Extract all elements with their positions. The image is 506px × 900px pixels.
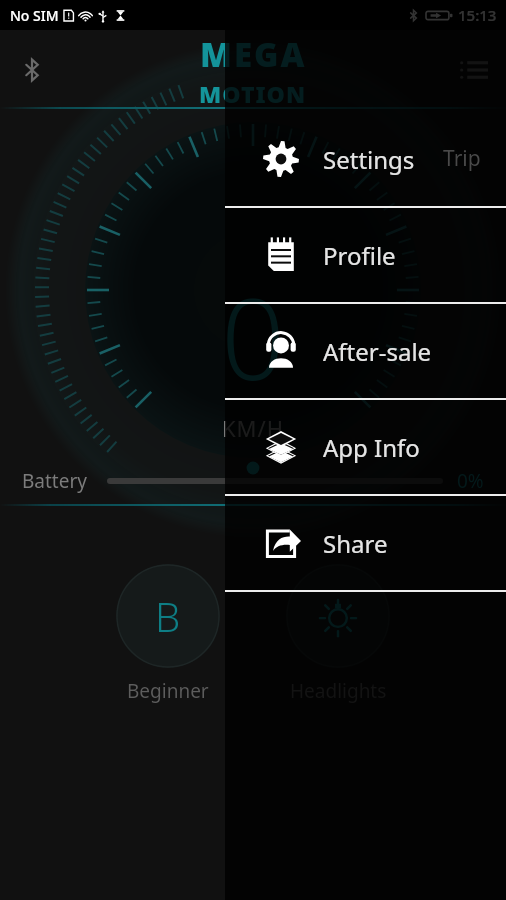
staticText: App Info xyxy=(323,431,420,464)
button[interactable]: Menu xyxy=(450,46,498,94)
staticText: No SIM xyxy=(10,6,59,25)
staticText: B xyxy=(155,589,181,643)
button[interactable]: Bluetooth connection xyxy=(8,46,56,94)
staticText: Battery xyxy=(22,468,87,494)
button[interactable]: Headlights xyxy=(282,560,394,708)
button[interactable]: Share xyxy=(225,496,506,590)
staticText: 15:13 xyxy=(458,5,497,25)
staticText: Settings xyxy=(323,143,415,176)
button[interactable]: App Info xyxy=(225,400,506,494)
staticText: 0 xyxy=(221,260,285,413)
staticText: Share xyxy=(323,527,388,560)
button[interactable]: After-sale xyxy=(225,304,506,398)
staticText: Trip xyxy=(443,144,481,173)
staticText: MEGA xyxy=(200,32,307,77)
staticText: Profile xyxy=(323,239,396,272)
staticText: After-sale xyxy=(323,335,432,368)
staticText: 0% xyxy=(457,468,484,494)
staticText: KM/H xyxy=(222,413,285,443)
button[interactable]: Profile xyxy=(225,208,506,302)
staticText: Beginner xyxy=(127,678,209,704)
staticText: Headlights xyxy=(290,678,387,704)
button[interactable]: Settings xyxy=(225,112,506,206)
staticText: MOTION xyxy=(199,78,307,109)
button[interactable]: B xyxy=(112,560,224,708)
